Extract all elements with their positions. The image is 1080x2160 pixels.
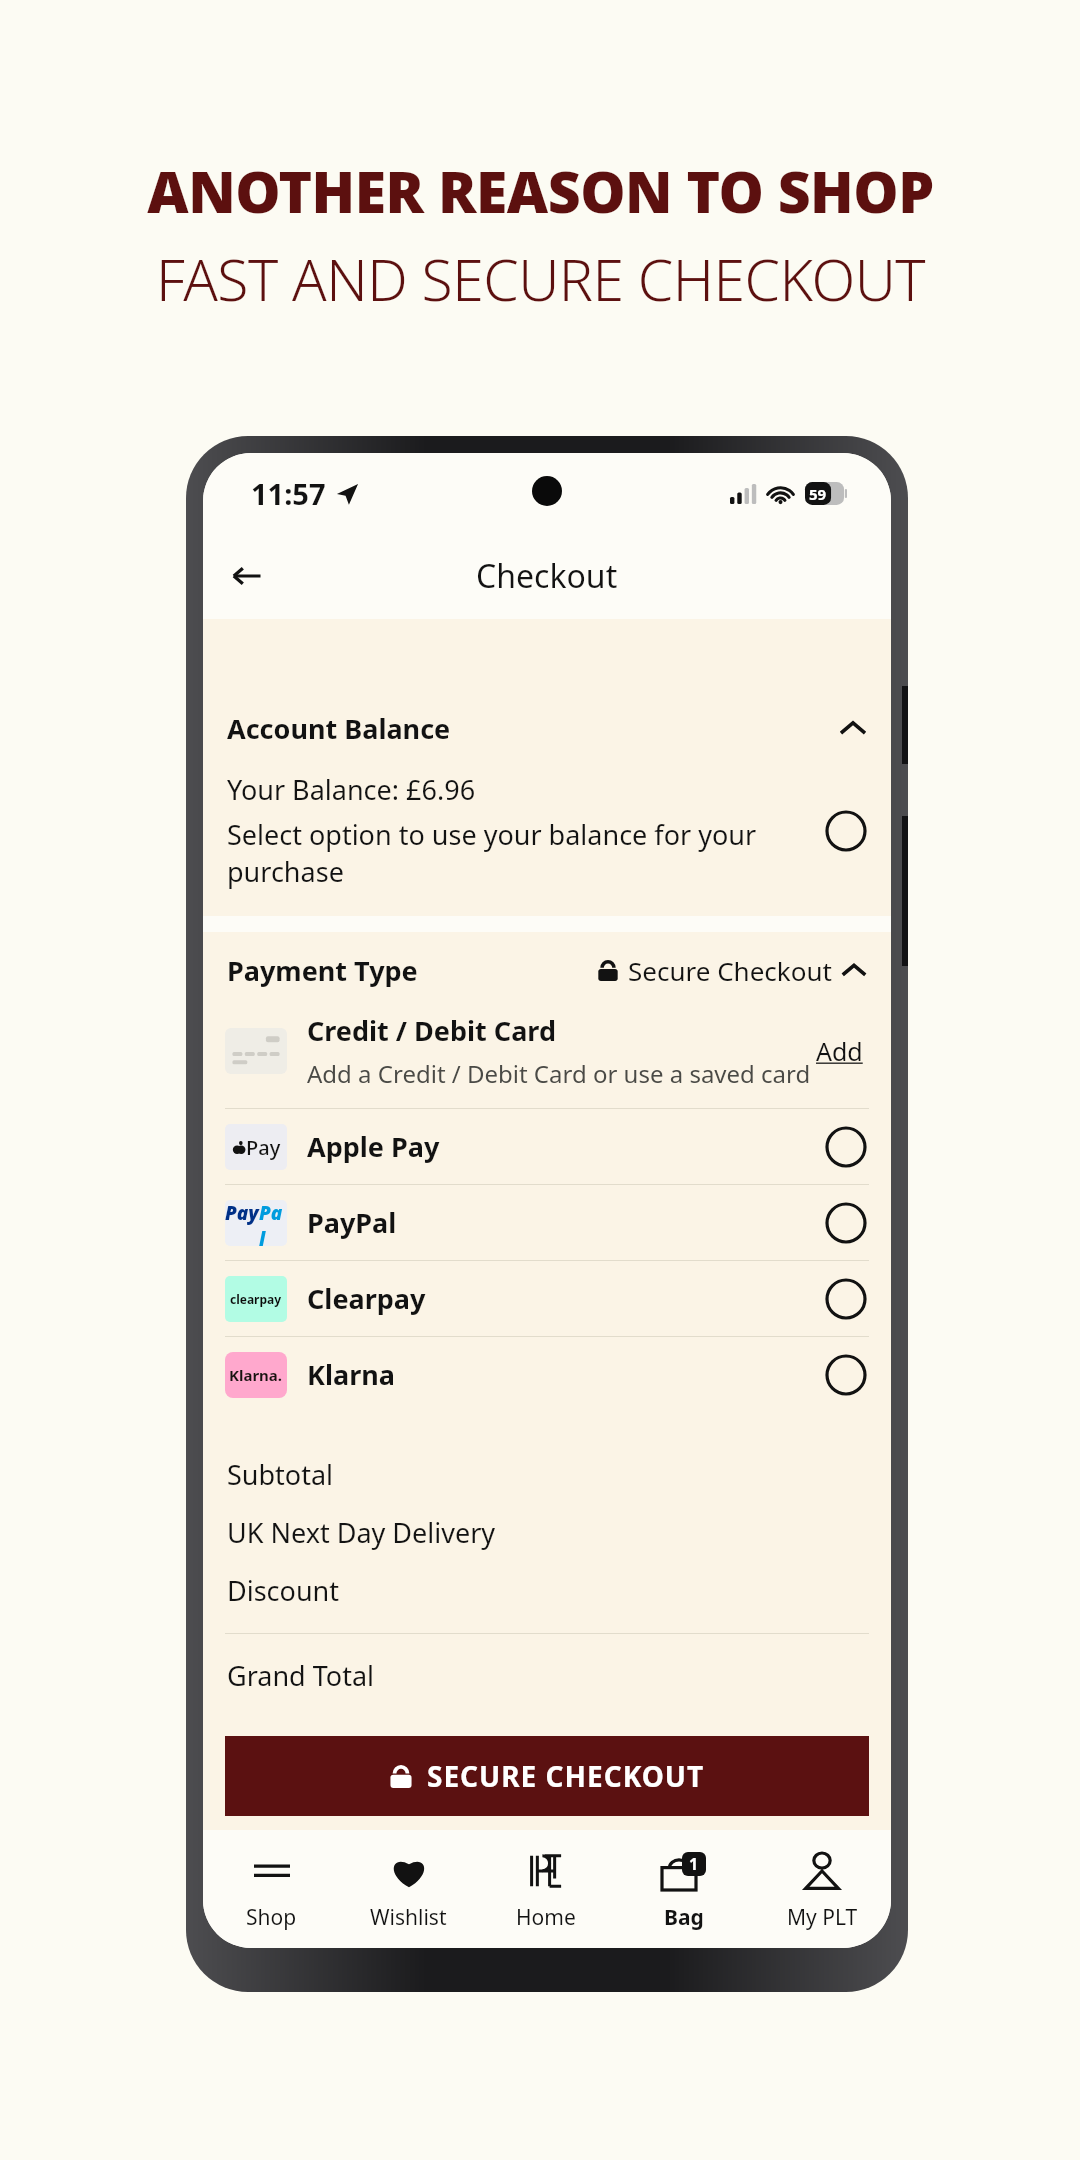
staticText: Shop	[246, 1903, 297, 1932]
staticText: Wishlist	[370, 1903, 447, 1932]
button[interactable]: Account Balance	[203, 691, 891, 765]
staticText: Klarna.	[229, 1365, 283, 1385]
staticText: Checkout	[476, 554, 618, 598]
staticText: Grand Total	[227, 1657, 375, 1694]
staticText: Pay	[225, 1200, 259, 1226]
button[interactable]: Home	[477, 1830, 615, 1948]
staticText: Subtotal	[227, 1456, 334, 1493]
staticText: Pay	[246, 1134, 281, 1161]
button[interactable]: Wishlist	[340, 1830, 477, 1948]
staticText: Credit / Debit Card	[307, 1012, 556, 1049]
staticText: Home	[516, 1903, 576, 1932]
staticText: My PLT	[787, 1903, 858, 1932]
staticText: Bag	[664, 1903, 704, 1932]
staticText: Pal	[259, 1200, 287, 1246]
button[interactable]: Credit / Debit Card	[203, 1008, 891, 1108]
staticText: Apple Pay	[307, 1128, 440, 1165]
staticText: Secure Checkout	[628, 953, 832, 988]
button[interactable]: Shop	[203, 1830, 340, 1948]
staticText: Account Balance	[227, 710, 451, 747]
button[interactable]: My PLT	[753, 1830, 891, 1948]
staticText: FAST AND SECURE CHECKOUT	[156, 240, 925, 318]
staticText: Discount	[227, 1572, 340, 1609]
button[interactable]: Pay	[203, 1185, 891, 1260]
staticText: clearpay	[230, 1291, 282, 1307]
button[interactable]: Klarna.	[203, 1337, 891, 1412]
staticText: Add a Credit / Debit Card or use a saved…	[307, 1057, 811, 1090]
staticText: 59	[809, 484, 827, 504]
staticText: Klarna	[307, 1356, 395, 1393]
staticText: 1	[689, 1853, 699, 1875]
button[interactable]: SECURE CHECKOUT	[225, 1736, 869, 1816]
button[interactable]: Payment Type	[203, 932, 891, 1008]
button[interactable]: Back	[219, 548, 275, 604]
staticText: UK Next Day Delivery	[227, 1514, 496, 1551]
staticText: Clearpay	[307, 1280, 426, 1317]
staticText: Add	[816, 1034, 863, 1068]
button[interactable]: Your Balance: £6.96	[203, 765, 891, 916]
staticText: Your Balance: £6.96	[227, 771, 476, 808]
staticText: ANOTHER REASON TO SHOP	[147, 152, 934, 230]
button[interactable]: Pay	[203, 1109, 891, 1184]
staticText: Select option to use your balance for yo…	[227, 816, 825, 890]
staticText: Payment Type	[227, 952, 418, 989]
staticText: 11:57	[251, 474, 326, 513]
button[interactable]: Add	[812, 1030, 867, 1072]
staticText: SECURE CHECKOUT	[427, 1757, 705, 1795]
button[interactable]: clearpay	[203, 1261, 891, 1336]
staticText: PayPal	[307, 1204, 397, 1241]
button[interactable]: 1	[615, 1830, 753, 1948]
